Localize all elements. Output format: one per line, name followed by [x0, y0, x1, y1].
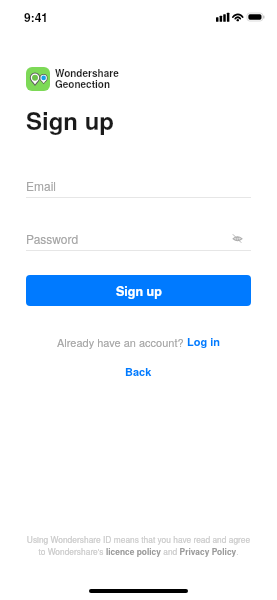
button[interactable]: Show password [230, 231, 245, 246]
staticText: Log in [187, 334, 220, 350]
button[interactable]: Sign up [26, 275, 251, 306]
staticText: Back [125, 364, 152, 380]
staticText: Password [26, 230, 79, 246]
staticText: Sign up [116, 282, 162, 300]
button[interactable]: Back [115, 362, 162, 382]
staticText: Wondershare Geonection [55, 66, 119, 91]
staticText: Email [26, 177, 57, 193]
button[interactable]: Email [26, 177, 251, 193]
staticText: Already have an account? [57, 334, 187, 350]
button[interactable]: Log in [187, 334, 220, 350]
staticText: Sign up [26, 103, 115, 137]
button[interactable]: Password [26, 230, 251, 246]
staticText: Using Wondershare ID means that you have… [26, 533, 251, 558]
staticText: 9:41 [24, 8, 49, 25]
